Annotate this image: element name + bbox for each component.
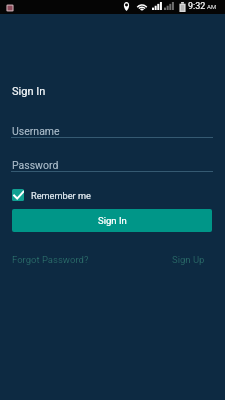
staticText: Remember me	[31, 190, 91, 201]
staticText: Sign In	[12, 85, 46, 98]
button[interactable]: Remember me	[12, 189, 91, 201]
staticText: Username	[12, 125, 60, 137]
button[interactable]: Sign In	[12, 209, 212, 232]
button[interactable]: Password	[11, 153, 213, 173]
button[interactable]: Forgot Password?	[12, 254, 89, 265]
staticText: Password	[12, 159, 59, 171]
staticText: 9:32	[188, 1, 206, 12]
staticText: Sign In	[98, 215, 127, 226]
button[interactable]: Sign Up	[172, 254, 205, 265]
staticText: Forgot Password?	[12, 254, 89, 265]
staticText: AM	[207, 3, 217, 10]
button[interactable]: Username	[11, 119, 213, 139]
staticText: Sign Up	[172, 254, 205, 265]
